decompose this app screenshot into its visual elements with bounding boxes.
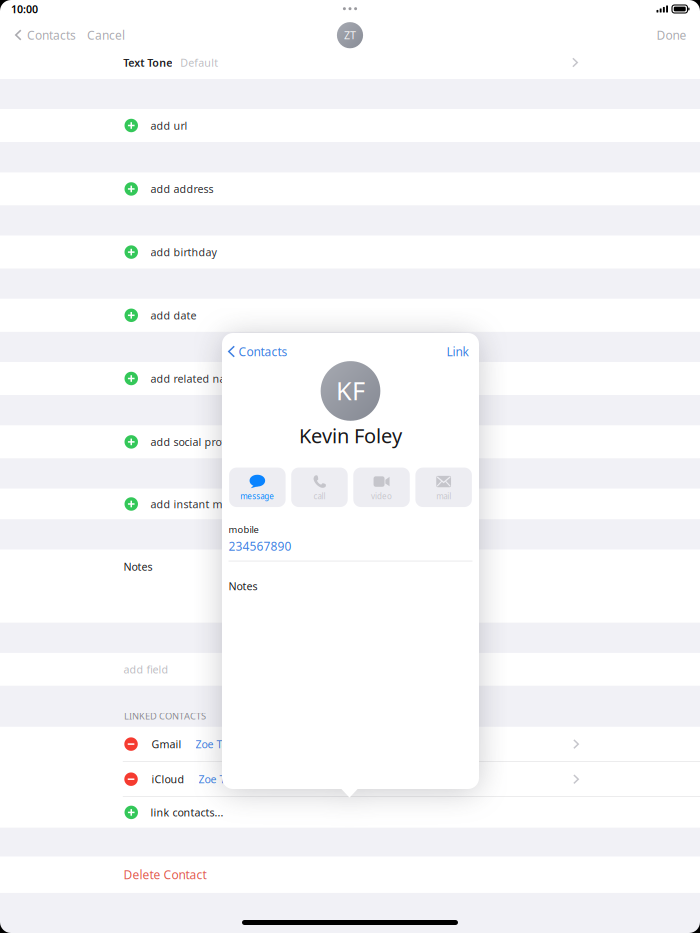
staticText: video — [371, 491, 392, 501]
staticText: LINKED CONTACTS — [124, 710, 206, 722]
staticText: mobile — [228, 523, 258, 536]
staticText: Text Tone — [123, 55, 172, 70]
button[interactable]: add url — [0, 109, 700, 142]
staticText: add social profile — [151, 435, 237, 449]
staticText: call — [313, 491, 325, 501]
staticText: ZT — [344, 28, 356, 42]
button[interactable]: Cancel — [81, 22, 131, 48]
staticText: Gmail — [151, 737, 181, 751]
button[interactable]: Link — [441, 340, 479, 362]
staticText: link contacts... — [151, 805, 224, 819]
button[interactable]: add field — [0, 653, 700, 686]
staticText: Contacts — [238, 343, 287, 359]
button[interactable]: Text Tone — [0, 52, 700, 73]
staticText: add instant message — [151, 497, 258, 511]
button[interactable]: add address — [0, 172, 700, 205]
staticText: Kevin Foley — [299, 422, 402, 449]
staticText: Default — [180, 55, 218, 70]
staticText: Notes — [228, 579, 257, 593]
staticText: Zoe Ta — [198, 772, 230, 786]
staticText: add address — [151, 182, 214, 196]
staticText: mail — [436, 491, 451, 501]
staticText: add birthday — [151, 245, 217, 259]
staticText: Cancel — [87, 27, 125, 43]
staticText: message — [240, 491, 274, 501]
button[interactable]: link contacts... — [0, 797, 700, 828]
button[interactable]: mail — [415, 468, 472, 507]
staticText: Delete Contact — [123, 867, 206, 883]
button[interactable]: add related name — [0, 362, 700, 395]
staticText: 10:00 — [11, 2, 38, 16]
button[interactable]: add birthday — [0, 235, 700, 269]
button[interactable]: Contacts — [222, 340, 292, 362]
button[interactable]: add instant message — [0, 489, 700, 519]
staticText: add url — [151, 118, 188, 133]
button[interactable]: call — [291, 468, 348, 507]
staticText: KF — [336, 374, 365, 407]
staticText: Contacts — [27, 27, 76, 43]
staticText: Link — [446, 343, 468, 359]
staticText: iCloud — [151, 772, 184, 786]
button[interactable]: video — [353, 468, 410, 507]
staticText: Done — [656, 27, 686, 43]
button[interactable]: Account — [337, 22, 363, 48]
staticText: Zoe Ta — [195, 737, 227, 751]
staticText: Notes — [123, 559, 152, 574]
button[interactable]: add social profile — [0, 425, 700, 458]
staticText: 234567890 — [228, 538, 291, 554]
button[interactable]: message — [229, 468, 286, 507]
staticText: add date — [151, 308, 197, 322]
staticText: add related name — [151, 371, 242, 386]
button[interactable]: iCloud — [0, 762, 700, 796]
button[interactable]: Contacts — [0, 22, 81, 48]
button[interactable]: Delete Contact — [0, 856, 700, 893]
button[interactable]: Gmail — [0, 727, 700, 761]
button[interactable]: Done — [650, 22, 700, 48]
button[interactable]: add date — [0, 299, 700, 332]
staticText: add field — [123, 662, 168, 676]
